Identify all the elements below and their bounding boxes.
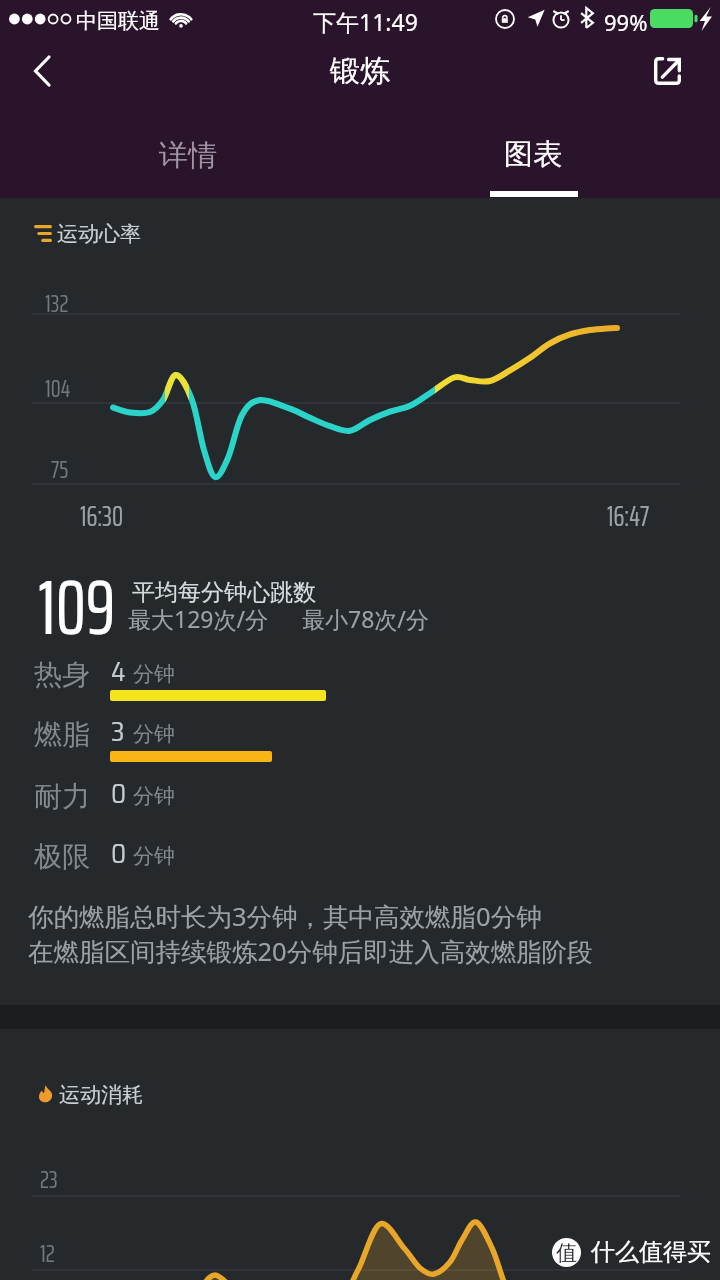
staticText: 分钟 (133, 721, 175, 747)
staticText: 在燃脂区间持续锻炼20分钟后即进入高效燃脂阶段 (28, 934, 593, 969)
staticText: 极限 (34, 839, 90, 874)
staticText: 锻炼 (0, 52, 720, 90)
button[interactable]: 图表 (360, 112, 705, 198)
staticText: 3 (111, 711, 125, 752)
staticText: 详情 (159, 137, 217, 174)
staticText: 什么值得买 (591, 1237, 711, 1267)
staticText: 23 (40, 1160, 58, 1199)
staticText: 值 (556, 1240, 577, 1266)
staticText: 运动消耗 (59, 1082, 143, 1106)
button[interactable]: 详情 (15, 112, 360, 198)
staticText: 12 (40, 1234, 55, 1273)
staticText: 0 (111, 833, 127, 874)
staticText: 分钟 (133, 783, 175, 809)
staticText: 热身 (34, 657, 90, 692)
button[interactable]: Back (17, 47, 65, 95)
staticText: 109 (38, 548, 116, 668)
staticText: 4 (111, 651, 126, 692)
staticText: 132 (45, 284, 69, 323)
staticText: 平均每分钟心跳数 (132, 578, 316, 607)
staticText: 16:30 (80, 494, 124, 538)
staticText: 99% (604, 7, 648, 37)
button[interactable]: Share (643, 47, 691, 95)
staticText: 耐力 (34, 779, 90, 814)
staticText: 燃脂 (34, 717, 90, 752)
staticText: 最大129次/分 (128, 603, 269, 634)
staticText: 104 (45, 369, 71, 408)
staticText: 75 (51, 450, 69, 489)
staticText: 中国联通 (76, 8, 160, 34)
staticText: 0 (111, 773, 127, 814)
staticText: 最小78次/分 (302, 603, 429, 634)
staticText: 16:47 (607, 494, 650, 538)
staticText: 你的燃脂总时长为3分钟，其中高效燃脂0分钟 (28, 899, 542, 934)
staticText: 分钟 (133, 843, 175, 869)
staticText: 图表 (504, 136, 562, 173)
staticText: 分钟 (133, 661, 175, 687)
staticText: 运动心率 (57, 221, 141, 245)
staticText: 下午11:49 (313, 6, 418, 37)
